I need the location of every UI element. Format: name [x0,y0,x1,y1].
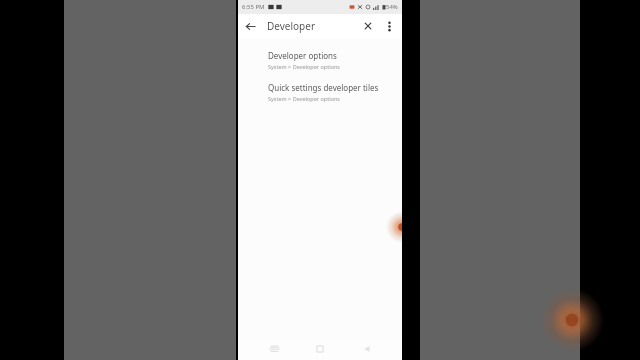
button[interactable]: Recent apps [263,338,285,360]
staticText: Quick settings developer tiles [268,82,379,93]
staticText: System > Developer options [268,95,341,102]
staticText: Developer [267,19,316,33]
button[interactable]: Quick settings developer tiles [238,76,402,108]
button[interactable]: Back [356,338,378,360]
button[interactable]: Home [309,338,331,360]
staticText: System > Developer options [268,63,341,70]
button[interactable]: Navigate up [238,14,262,38]
staticText: 6:55 PM [242,3,265,11]
staticText: 54% [386,3,398,11]
button[interactable]: More options [379,16,399,36]
button[interactable]: Clear search [357,15,379,37]
button[interactable]: Developer options [238,44,402,76]
staticText: Developer options [268,50,337,61]
